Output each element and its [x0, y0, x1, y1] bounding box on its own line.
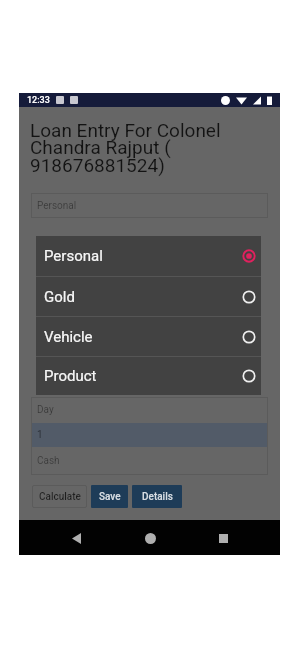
staticText: Details	[142, 491, 173, 503]
button[interactable]: Personal	[31, 193, 268, 218]
staticText: Personal	[37, 200, 77, 212]
button[interactable]: Details	[132, 485, 182, 508]
button[interactable]: Cash	[31, 447, 268, 475]
button[interactable]: Vehicle	[36, 317, 261, 356]
staticText: Gold	[44, 288, 75, 306]
staticText: Day	[37, 404, 54, 416]
staticText: Product	[44, 367, 97, 385]
button[interactable]: Home	[133, 521, 167, 555]
button[interactable]: Back	[59, 521, 93, 555]
staticText: Save	[99, 491, 121, 503]
button[interactable]: Recents	[206, 521, 240, 555]
button[interactable]: Gold	[36, 277, 261, 316]
button[interactable]: Personal	[36, 236, 261, 276]
button[interactable]: Day	[31, 397, 268, 423]
staticText: Vehicle	[44, 328, 93, 346]
button[interactable]: Product	[36, 357, 261, 395]
staticText: Calculate	[39, 491, 81, 503]
staticText: Personal	[44, 247, 103, 265]
staticText: Loan Entry For Colonel Chandra Rajput ( …	[30, 119, 221, 177]
staticText: 1	[37, 429, 43, 441]
button[interactable]: Save	[91, 485, 128, 508]
staticText: Cash	[37, 455, 60, 467]
staticText: 12:33	[27, 95, 50, 106]
button[interactable]: Calculate	[32, 485, 87, 508]
